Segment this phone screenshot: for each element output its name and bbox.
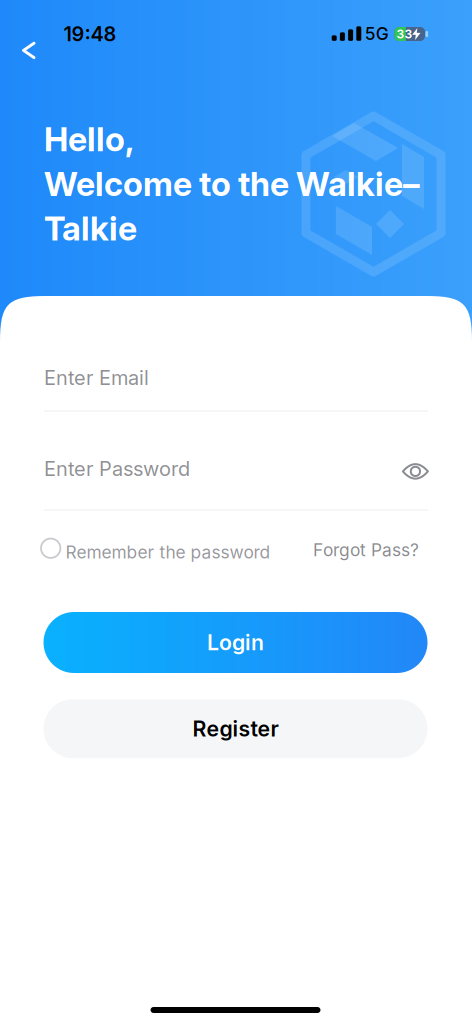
staticText: 5G xyxy=(365,24,389,44)
staticText: Login xyxy=(207,630,264,655)
staticText: Enter Email xyxy=(44,366,149,389)
staticText: Talkie xyxy=(44,209,137,248)
staticText: 19:48 xyxy=(63,22,116,46)
staticText: Enter Password xyxy=(44,457,190,480)
button[interactable]: Back xyxy=(6,28,50,72)
staticText: Register xyxy=(192,716,278,741)
button[interactable]: Forgot Pass? xyxy=(269,535,419,565)
button[interactable]: Login xyxy=(43,612,427,673)
button[interactable]: Enter Password xyxy=(44,452,428,510)
button[interactable]: Register xyxy=(43,699,427,758)
staticText: Hello, xyxy=(44,119,134,159)
staticText: 33 xyxy=(397,27,413,41)
button[interactable]: Enter Email xyxy=(44,352,428,410)
button[interactable]: Remember the password xyxy=(41,538,270,558)
staticText: Forgot Pass? xyxy=(313,540,419,560)
button[interactable]: Show password xyxy=(398,454,432,488)
staticText: Welcome to the Walkie– xyxy=(44,164,420,203)
staticText: Remember the password xyxy=(65,542,270,562)
